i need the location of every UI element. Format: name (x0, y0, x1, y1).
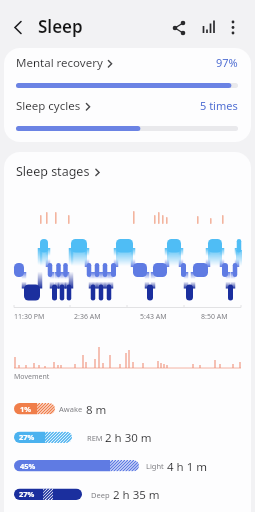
button[interactable] (8, 18, 28, 38)
staticText: 11:30 PM (14, 312, 45, 322)
button[interactable]: Sleep cycles (4, 91, 251, 124)
staticText: Sleep stages (16, 163, 90, 180)
staticText: 45% (20, 461, 36, 471)
staticText: Deep (91, 490, 110, 500)
button[interactable]: Mental recovery (4, 48, 251, 81)
staticText: 4 h 1 m (167, 459, 207, 475)
staticText: 1% (20, 404, 32, 414)
staticText: Awake (59, 404, 83, 414)
staticText: 2 h 30 m (105, 430, 152, 446)
staticText: 5 times (200, 98, 238, 113)
button[interactable] (199, 18, 219, 38)
staticText: Light (146, 461, 164, 471)
staticText: 5:43 AM (140, 312, 167, 322)
staticText: 2 h 35 m (113, 487, 160, 503)
staticText: 27% (19, 432, 35, 442)
button[interactable] (224, 18, 242, 36)
staticText: Movement (14, 372, 50, 382)
staticText: Mental recovery (16, 55, 103, 71)
staticText: REM (87, 433, 103, 443)
staticText: 2:36 AM (74, 312, 101, 322)
staticText: 8 m (86, 402, 107, 418)
button[interactable]: Sleep stages (4, 152, 251, 188)
staticText: Sleep cycles (16, 98, 81, 114)
staticText: 27% (19, 489, 35, 499)
staticText: 8:50 AM (201, 312, 228, 322)
staticText: 97% (216, 55, 238, 70)
staticText: Sleep (38, 15, 83, 38)
button[interactable] (169, 18, 189, 38)
